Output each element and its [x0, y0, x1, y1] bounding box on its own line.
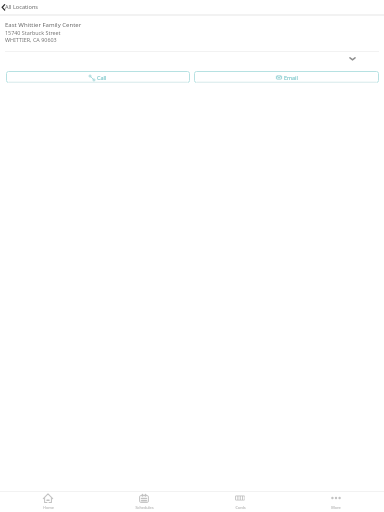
staticText: Schedules: [135, 505, 154, 510]
button[interactable]: Home: [0, 492, 96, 510]
staticText: WHITTIER, CA 90603: [5, 36, 57, 43]
button[interactable]: Cards: [192, 492, 288, 510]
staticText: Email: [284, 74, 298, 81]
staticText: Call: [97, 74, 107, 81]
staticText: Home: [43, 505, 54, 510]
staticText: Cards: [235, 505, 246, 510]
button[interactable]: Schedules: [96, 492, 192, 510]
button[interactable]: More: [288, 492, 384, 510]
button[interactable]: All Locations: [0, 2, 45, 12]
staticText: More: [331, 505, 341, 510]
staticText: All Locations: [5, 3, 39, 11]
staticText: 15740 Starbuck Street: [5, 29, 61, 36]
button[interactable]: Email: [194, 71, 379, 83]
staticText: East Whittier Family Center: [5, 21, 82, 29]
button[interactable]: Expand details: [0, 50, 384, 67]
other: Expand details: [349, 55, 356, 62]
button[interactable]: Call: [6, 71, 190, 83]
